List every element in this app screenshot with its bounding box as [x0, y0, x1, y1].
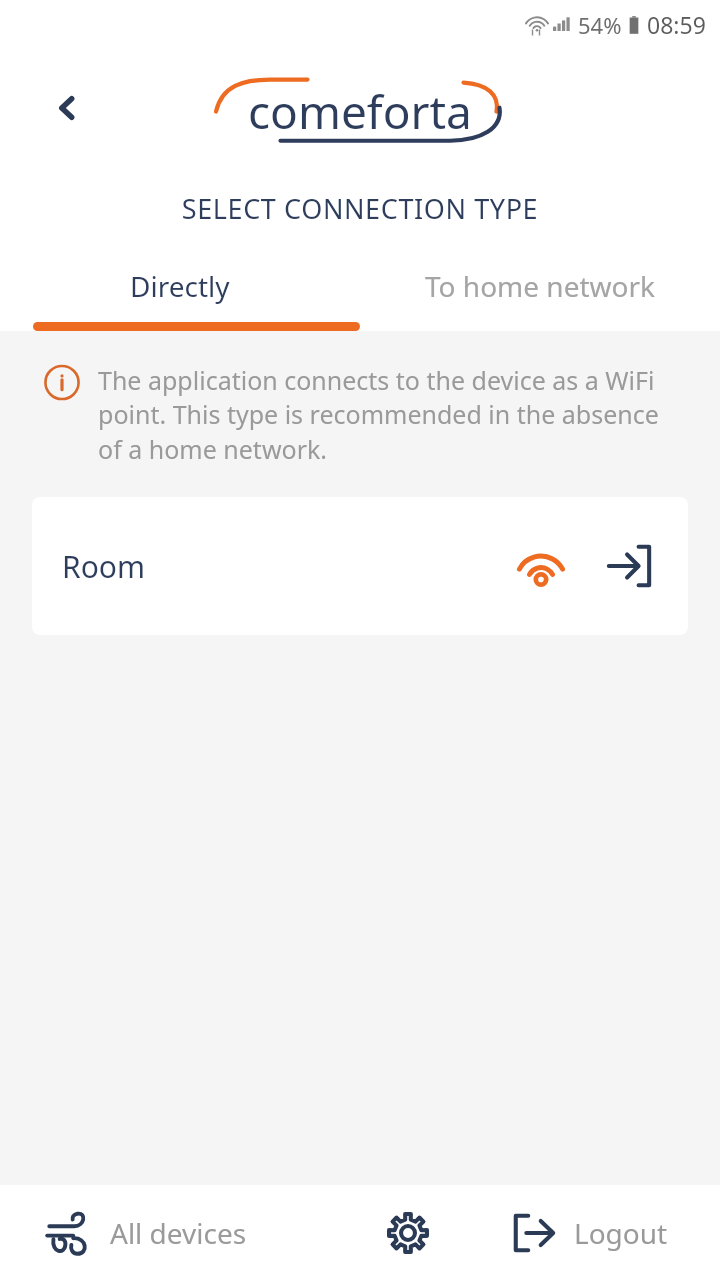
staticText: The application connects to the device a…: [98, 363, 680, 467]
staticText: Room: [62, 546, 146, 587]
button[interactable]: Back: [32, 73, 102, 143]
staticText: SELECT CONNECTION TYPE: [0, 190, 720, 227]
staticText: comeforta: [248, 80, 472, 143]
staticText: Directly: [130, 267, 230, 305]
button[interactable]: Settings: [377, 1202, 439, 1264]
button[interactable]: Connect: [600, 537, 658, 595]
button[interactable]: WiFi signal: [512, 537, 570, 595]
staticText: All devices: [110, 1214, 247, 1252]
button[interactable]: Logout: [510, 1209, 668, 1257]
staticText: Logout: [574, 1214, 668, 1252]
staticText: To home network: [425, 267, 655, 305]
button[interactable]: To home network: [360, 255, 720, 317]
button[interactable]: All devices: [42, 1207, 247, 1259]
staticText: 08:59: [647, 9, 706, 40]
button[interactable]: Room: [32, 497, 688, 635]
button[interactable]: Directly: [0, 255, 360, 317]
staticText: 54%: [578, 10, 622, 40]
